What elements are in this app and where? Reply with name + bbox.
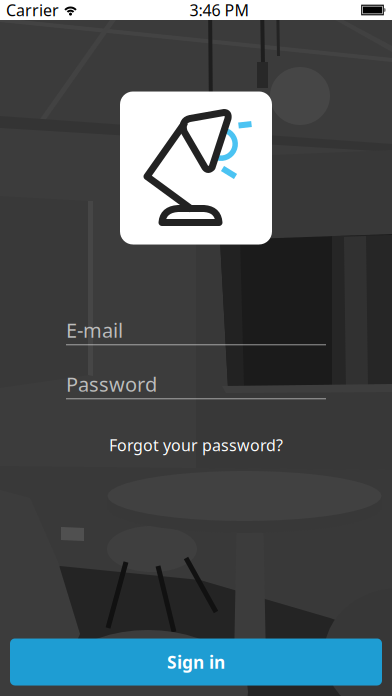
staticText: Carrier xyxy=(6,0,59,21)
staticText: E-mail xyxy=(66,317,123,343)
staticText: 3:46 PM xyxy=(189,0,249,21)
button[interactable]: Forgot your password? xyxy=(97,426,295,464)
button[interactable]: Sign in xyxy=(10,638,382,685)
staticText: Forgot your password? xyxy=(109,434,283,456)
staticText: Sign in xyxy=(167,650,225,673)
staticText: Password xyxy=(66,371,157,397)
